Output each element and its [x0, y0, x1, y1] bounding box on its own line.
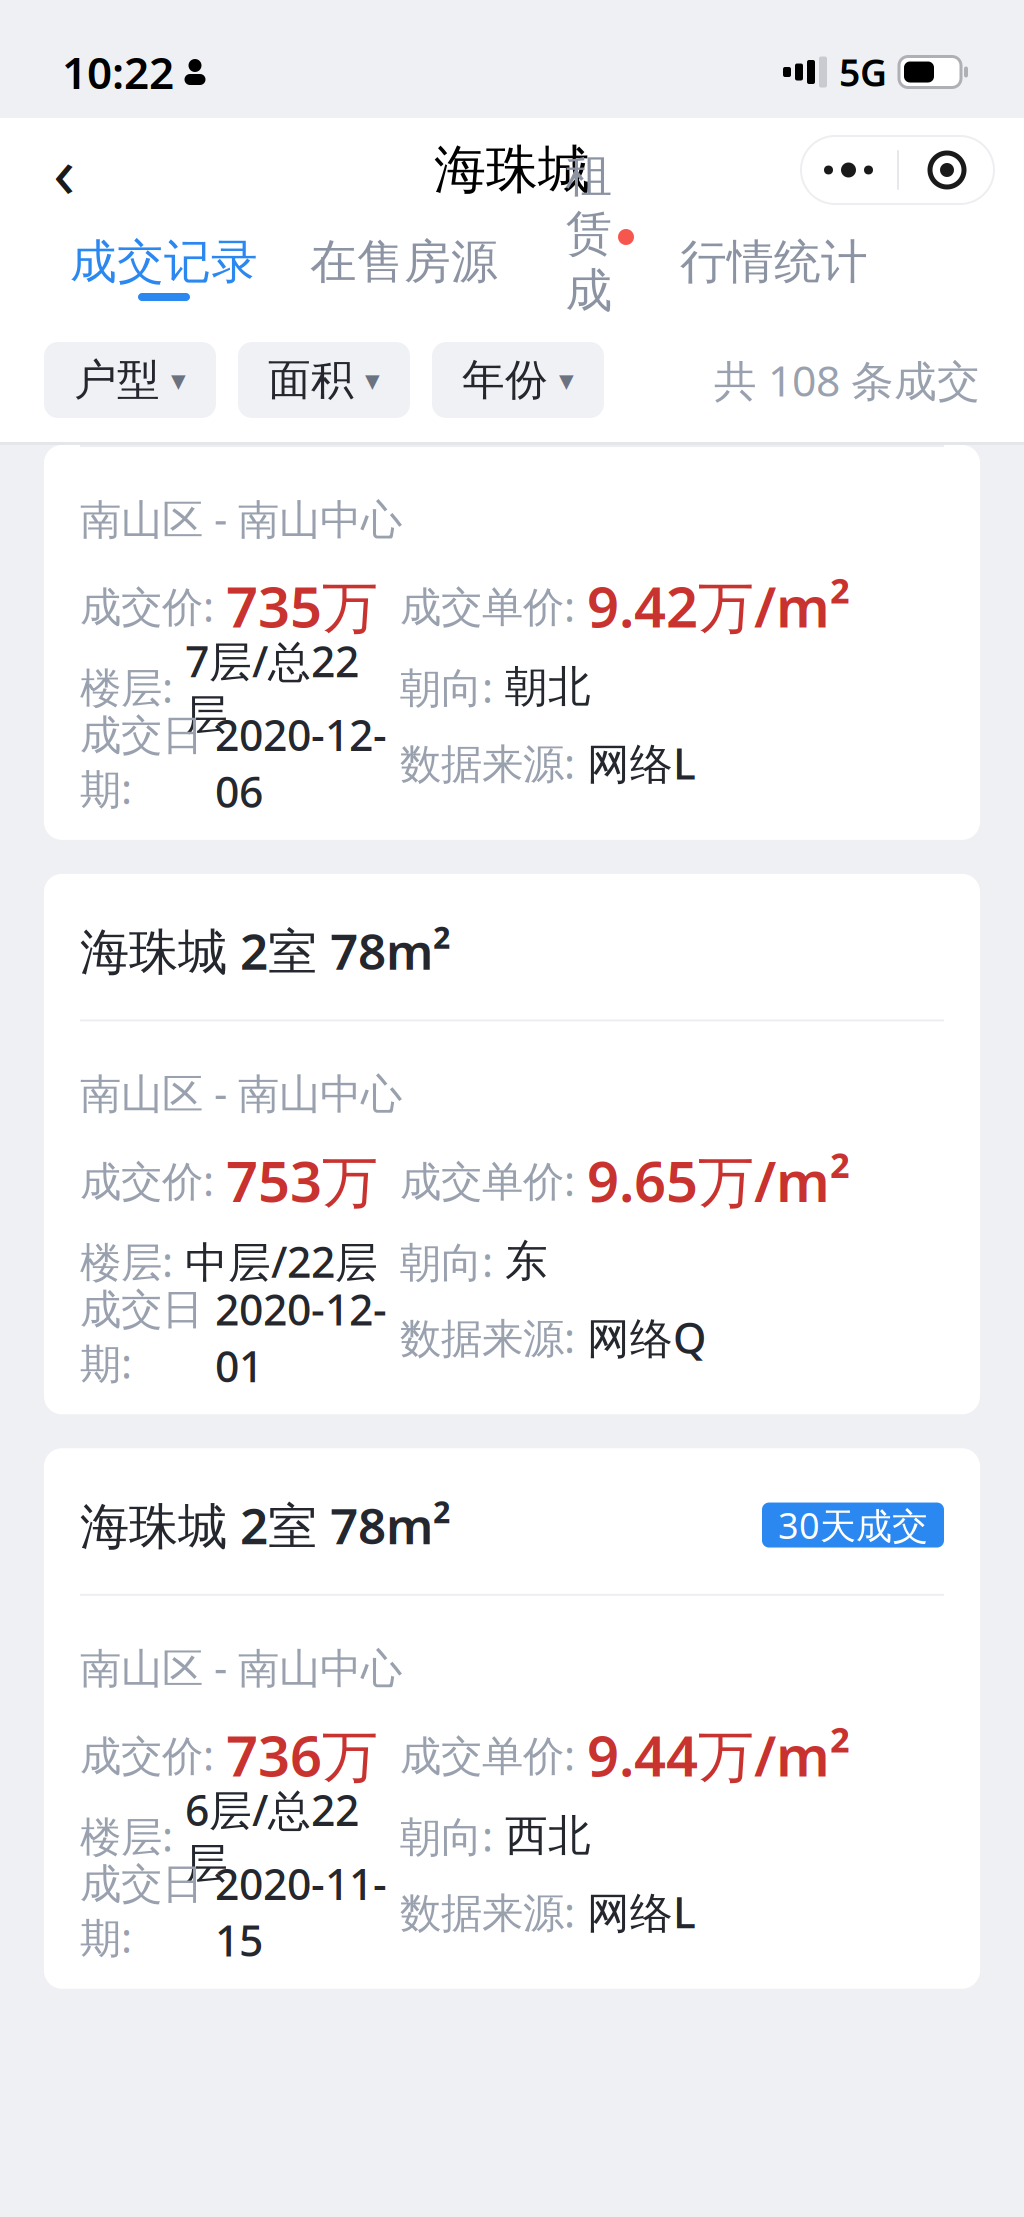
staticText: 6层/总22层 — [185, 1781, 359, 1890]
staticText: 成交单价: — [400, 1727, 575, 1782]
staticText: 租赁成交 — [565, 147, 612, 377]
staticText: ▾ — [171, 363, 186, 397]
staticText: 网络L — [587, 735, 696, 791]
button[interactable]: 行情统计 — [654, 222, 894, 318]
staticText: 成交单价: — [400, 578, 575, 633]
staticText: 成交价: — [80, 578, 214, 633]
button[interactable]: 面积 — [238, 342, 410, 418]
button[interactable]: 返回 — [18, 124, 110, 216]
button[interactable]: 年份 — [432, 342, 604, 418]
staticText: 9.65万/m² — [587, 1143, 851, 1217]
staticText: 成交价: — [80, 1153, 214, 1208]
staticText: 2020-11-15 — [215, 1855, 387, 1968]
button[interactable]: 海珠城 2室 78m² — [0, 1448, 1024, 1989]
staticText: 海珠城 — [434, 138, 590, 202]
button[interactable]: 更多 — [801, 136, 994, 204]
staticText: 南山区 - 南山中心 — [80, 491, 402, 546]
button[interactable]: 租赁成交 — [524, 222, 654, 318]
button[interactable]: 户型 — [44, 342, 216, 418]
staticText: 9.42万/m² — [587, 569, 851, 643]
staticText: 2020-12-01 — [215, 1281, 387, 1394]
staticText: 年份 — [462, 354, 548, 406]
staticText: 成交价: — [80, 1727, 214, 1782]
staticText: 5G — [839, 47, 887, 97]
button[interactable]: 南山区 - 南山中心 — [0, 445, 1024, 840]
staticText: 朝向: — [400, 1808, 493, 1863]
staticText: 海珠城 2室 78m² — [80, 918, 451, 983]
staticText: ‹ — [53, 122, 75, 218]
staticText: 户型 — [74, 354, 160, 406]
button[interactable]: 在售房源 — [284, 222, 524, 318]
staticText: 735万 — [226, 569, 378, 643]
staticText: 成交日期: — [80, 710, 203, 816]
staticText: 南山区 - 南山中心 — [80, 1640, 402, 1695]
staticText: 成交日期: — [80, 1284, 203, 1390]
staticText: 楼层: — [80, 659, 173, 714]
staticText: 7层/总22层 — [185, 632, 359, 741]
staticText: 西北 — [505, 1809, 591, 1862]
staticText: 朝向: — [400, 659, 493, 714]
staticText: 朝北 — [505, 661, 591, 713]
button[interactable]: 海珠城 2室 78m² — [0, 874, 1024, 1414]
staticText: 成交单价: — [400, 1153, 575, 1208]
button[interactable]: 成交记录 — [44, 222, 284, 318]
staticText: 共 108 条成交 — [714, 352, 980, 408]
staticText: 网络Q — [587, 1309, 706, 1366]
staticText: 736万 — [226, 1717, 378, 1792]
staticText: ▾ — [365, 363, 380, 397]
staticText: 楼层: — [80, 1808, 173, 1863]
staticText: 30天成交 — [778, 1501, 928, 1549]
staticText: 楼层: — [80, 1234, 173, 1289]
staticText: 成交日期: — [80, 1859, 203, 1965]
staticText: 成交记录 — [70, 233, 258, 291]
staticText: 10:22 — [62, 43, 174, 101]
staticText: 2020-12-06 — [215, 706, 387, 819]
staticText: 行情统计 — [680, 233, 868, 291]
staticText: 在售房源 — [310, 233, 498, 291]
staticText: 数据来源: — [400, 1310, 575, 1365]
staticText: ▾ — [559, 363, 574, 397]
staticText: 南山区 - 南山中心 — [80, 1065, 402, 1120]
staticText: 753万 — [226, 1143, 378, 1217]
staticText: 9.44万/m² — [587, 1717, 851, 1792]
staticText: 数据来源: — [400, 1884, 575, 1939]
staticText: 朝向: — [400, 1234, 493, 1289]
staticText: 面积 — [268, 354, 354, 406]
staticText: 网络L — [587, 1883, 696, 1940]
staticText: 东 — [505, 1235, 548, 1287]
staticText: 中层/22层 — [185, 1233, 378, 1290]
staticText: 海珠城 2室 78m² — [80, 1492, 451, 1558]
staticText: 数据来源: — [400, 735, 575, 790]
